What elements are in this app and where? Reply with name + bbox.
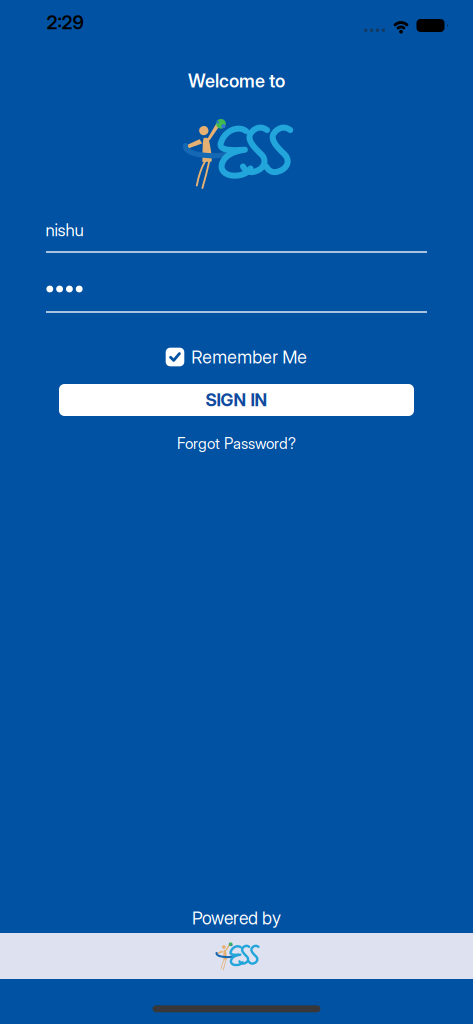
staticText: Forgot Password? (177, 434, 296, 453)
staticText: Remember Me (191, 346, 307, 368)
staticText: nishu (45, 220, 83, 240)
button[interactable]: SIGN IN (59, 384, 414, 416)
staticText: Welcome to (188, 70, 285, 92)
staticText: SIGN IN (205, 389, 267, 410)
staticText: Powered by (192, 907, 281, 929)
button[interactable]: Forgot Password? (177, 434, 296, 453)
staticText: 2:29 (46, 11, 83, 34)
button[interactable]: Remember Me (166, 346, 307, 368)
